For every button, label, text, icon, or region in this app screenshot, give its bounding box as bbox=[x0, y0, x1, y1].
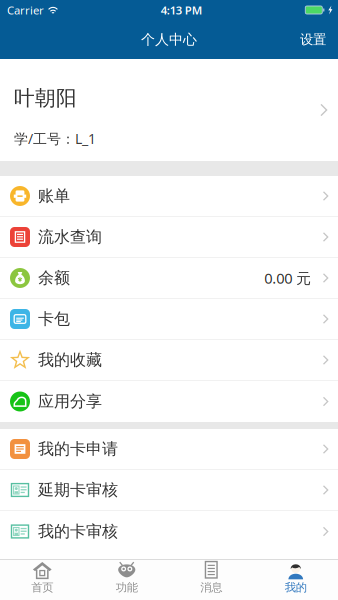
staticText: 余额 bbox=[38, 268, 70, 288]
button[interactable]: 我的卡审核 bbox=[0, 511, 338, 552]
staticText: 叶朝阳 bbox=[14, 85, 77, 111]
staticText: 我的收藏 bbox=[38, 350, 102, 370]
staticText: 首页 bbox=[31, 580, 53, 595]
staticText: 功能 bbox=[116, 580, 138, 595]
button[interactable]: 我的卡申请 bbox=[0, 429, 338, 470]
staticText: Carrier bbox=[7, 2, 44, 18]
staticText: 我的卡审核 bbox=[38, 521, 118, 542]
button[interactable]: 应用分享 bbox=[0, 381, 338, 422]
staticText: 个人中心 bbox=[141, 31, 197, 48]
button[interactable]: 消息 bbox=[169, 560, 253, 600]
staticText: 消息 bbox=[200, 580, 222, 595]
button[interactable]: 我的 bbox=[253, 560, 338, 600]
button[interactable]: 流水查询 bbox=[0, 217, 338, 258]
button[interactable]: 首页 bbox=[0, 560, 84, 600]
staticText: 流水查询 bbox=[38, 227, 102, 247]
button[interactable]: 叶朝阳 bbox=[0, 59, 338, 161]
staticText: 我的 bbox=[285, 580, 307, 595]
staticText: 延期卡审核 bbox=[38, 480, 118, 500]
staticText: 设置 bbox=[300, 31, 326, 48]
staticText: 0.00 元 bbox=[264, 268, 311, 288]
button[interactable]: 账单 bbox=[0, 176, 338, 217]
button[interactable]: 功能 bbox=[84, 560, 169, 600]
staticText: 卡包 bbox=[38, 309, 70, 329]
button[interactable]: 延期卡审核 bbox=[0, 470, 338, 511]
button[interactable]: 我的收藏 bbox=[0, 340, 338, 381]
button[interactable]: 卡包 bbox=[0, 299, 338, 340]
staticText: 学/工号：L_1 bbox=[14, 129, 96, 148]
button[interactable]: 设置 bbox=[288, 21, 338, 58]
staticText: 我的卡申请 bbox=[38, 439, 118, 459]
button[interactable]: 余额 bbox=[0, 258, 338, 299]
staticText: 应用分享 bbox=[38, 391, 102, 412]
staticText: 4:13 PM bbox=[161, 2, 203, 18]
staticText: 账单 bbox=[38, 186, 70, 206]
